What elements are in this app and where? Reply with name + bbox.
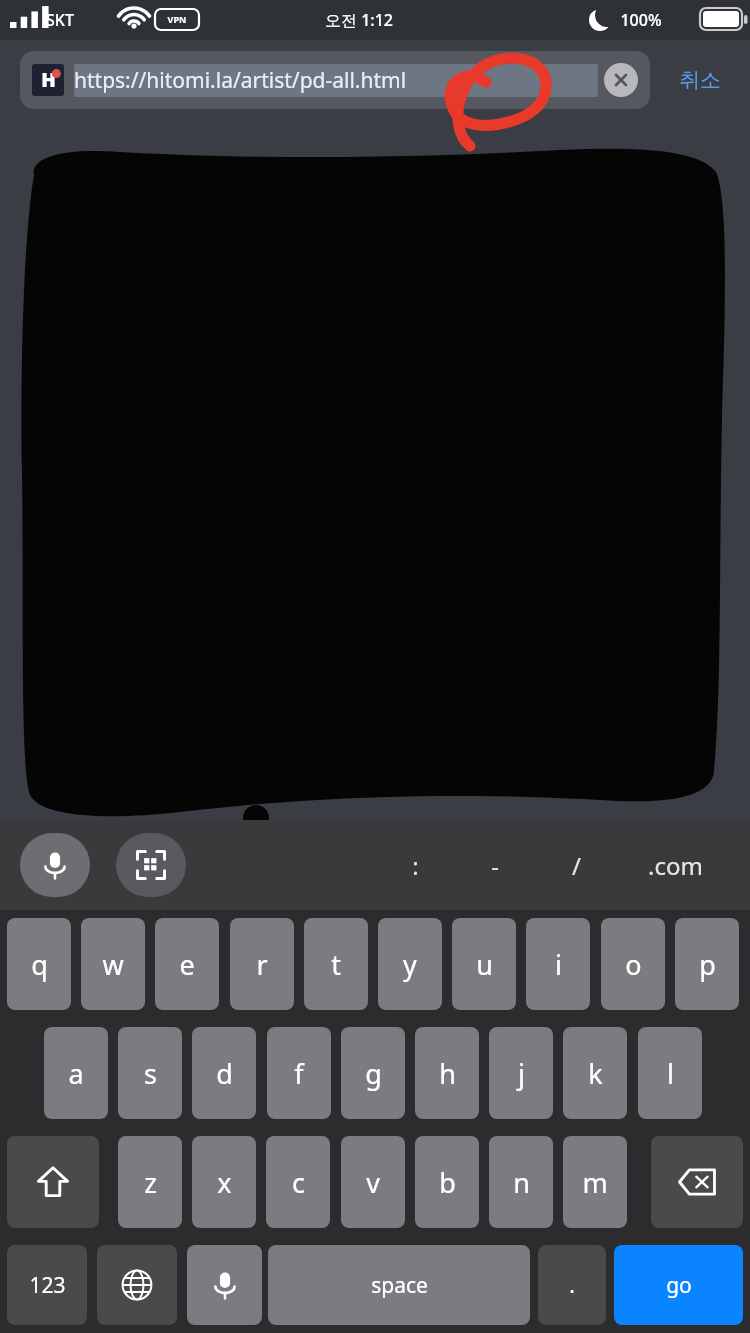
staticText: VPN	[155, 13, 199, 25]
staticText: f	[294, 1055, 304, 1092]
button[interactable]: o	[601, 918, 665, 1010]
button[interactable]: w	[81, 918, 145, 1010]
button[interactable]: b	[415, 1136, 479, 1228]
staticText: h	[439, 1055, 456, 1092]
staticText: b	[439, 1164, 456, 1201]
button[interactable]: s	[118, 1027, 182, 1119]
button[interactable]: Clear text	[604, 63, 638, 97]
button[interactable]: e	[155, 918, 219, 1010]
button[interactable]: q	[7, 918, 71, 1010]
button[interactable]: d	[192, 1027, 256, 1119]
staticText: a	[68, 1055, 84, 1092]
button[interactable]: .com	[628, 845, 723, 885]
staticText: s	[144, 1055, 157, 1092]
staticText: l	[667, 1055, 674, 1092]
button[interactable]: p	[675, 918, 739, 1010]
staticText: x	[217, 1164, 232, 1201]
staticText: v	[366, 1164, 380, 1201]
button[interactable]: x	[192, 1136, 256, 1228]
staticText: g	[365, 1055, 382, 1092]
staticText: q	[31, 946, 48, 983]
staticText: u	[476, 946, 493, 983]
staticText: j	[518, 1055, 525, 1092]
button[interactable]: y	[378, 918, 442, 1010]
staticText: k	[588, 1055, 603, 1092]
staticText: 123	[29, 1271, 66, 1300]
staticText: /	[572, 849, 581, 882]
staticText: https://hitomi.la/artist/pd-all.html	[74, 66, 598, 95]
staticText: o	[625, 946, 642, 983]
staticText: c	[292, 1164, 305, 1201]
button[interactable]: Backspace	[651, 1136, 743, 1228]
staticText: :	[412, 849, 419, 882]
button[interactable]: m	[563, 1136, 627, 1228]
button[interactable]: c	[266, 1136, 330, 1228]
button[interactable]: t	[304, 918, 368, 1010]
button[interactable]: z	[118, 1136, 182, 1228]
button[interactable]: n	[489, 1136, 553, 1228]
button[interactable]: l	[638, 1027, 702, 1119]
button[interactable]: Voice input	[20, 833, 90, 897]
staticText: i	[555, 946, 562, 983]
button[interactable]: r	[230, 918, 294, 1010]
button[interactable]: Scan code	[116, 833, 186, 897]
staticText: space	[371, 1271, 428, 1300]
button[interactable]: :	[395, 845, 435, 885]
button[interactable]: h	[415, 1027, 479, 1119]
button[interactable]: k	[563, 1027, 627, 1119]
button[interactable]: space	[268, 1245, 530, 1325]
button[interactable]: g	[341, 1027, 405, 1119]
button[interactable]: H	[20, 51, 650, 109]
staticText: e	[179, 946, 195, 983]
staticText: 100%	[620, 9, 662, 31]
staticText: -	[491, 849, 499, 882]
staticText: r	[256, 946, 268, 983]
staticText: go	[666, 1271, 692, 1300]
staticText: m	[582, 1164, 608, 1201]
staticText: y	[403, 946, 417, 983]
button[interactable]: f	[267, 1027, 331, 1119]
staticText: d	[216, 1055, 233, 1092]
button[interactable]: Voice typing	[187, 1245, 262, 1325]
button[interactable]: i	[526, 918, 590, 1010]
button[interactable]: 123	[7, 1245, 87, 1325]
staticText: 취소	[679, 67, 721, 93]
button[interactable]: Shift	[7, 1136, 99, 1228]
button[interactable]: j	[489, 1027, 553, 1119]
button[interactable]: .	[538, 1245, 606, 1325]
button[interactable]: v	[341, 1136, 405, 1228]
staticText: p	[699, 946, 716, 983]
button[interactable]: go	[614, 1245, 743, 1325]
button[interactable]: /	[556, 845, 596, 885]
staticText: w	[102, 946, 124, 983]
staticText: t	[331, 946, 341, 983]
staticText: .	[569, 1271, 575, 1300]
button[interactable]: Switch keyboard	[97, 1245, 177, 1325]
staticText: SKT	[46, 9, 74, 31]
staticText: z	[144, 1164, 157, 1201]
button[interactable]: -	[475, 845, 515, 885]
button[interactable]: 취소	[650, 51, 750, 109]
staticText: .com	[648, 849, 703, 882]
staticText: n	[513, 1164, 530, 1201]
button[interactable]: u	[452, 918, 516, 1010]
button[interactable]: a	[44, 1027, 108, 1119]
staticText: 오전 1:12	[325, 9, 393, 31]
staticText: H	[41, 67, 56, 93]
